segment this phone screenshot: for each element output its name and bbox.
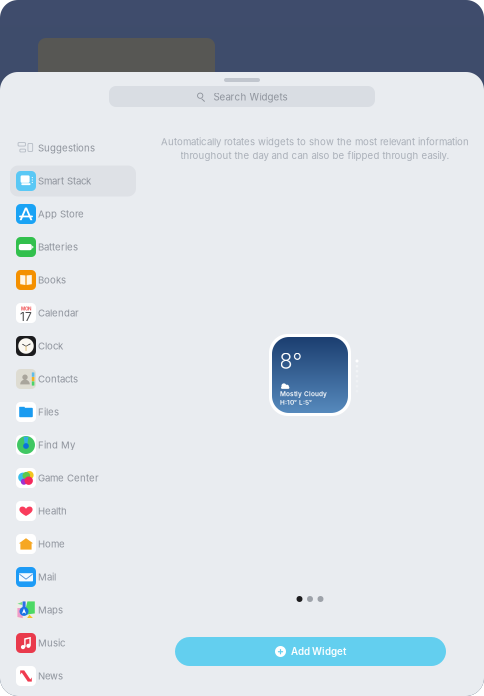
button[interactable]: Books [0,263,146,296]
button[interactable]: App Store [0,197,146,230]
staticText: Clock [38,340,63,352]
staticText: Search Widgets [213,91,287,103]
staticText: Add Widget [291,646,346,657]
staticText: Find My [38,439,75,451]
button[interactable]: Health [0,494,146,527]
button[interactable]: Add Widget [175,637,446,666]
button[interactable]: Suggestions [0,131,146,164]
button[interactable]: Game Center [0,461,146,494]
staticText: App Store [38,208,84,220]
button[interactable]: Files [0,395,146,428]
staticText: Mostly Cloudy [280,390,327,398]
staticText: Contacts [38,373,78,385]
button[interactable]: MON [0,296,146,329]
staticText: Calendar [38,307,79,319]
staticText: MON [21,306,31,311]
staticText: Files [38,406,59,418]
button[interactable]: Maps [0,593,146,626]
staticText: Smart Stack [38,175,91,187]
staticText: 8° [279,348,302,374]
button[interactable]: Smart Stack [0,164,146,197]
staticText: throughout the day and can also be flipp… [180,150,449,161]
staticText: Music [38,637,65,649]
button[interactable]: Clock [0,329,146,362]
button[interactable]: Mail [0,560,146,593]
staticText: Maps [38,604,63,616]
button[interactable]: Music [0,626,146,659]
staticText: Mail [38,571,56,583]
staticText: H:10° L:5° [280,398,312,406]
staticText: Batteries [38,241,78,253]
button[interactable]: News [0,659,146,692]
staticText: Suggestions [38,142,95,154]
staticText: Home [38,538,65,550]
button[interactable]: Home [0,527,146,560]
staticText: Automatically rotates widgets to show th… [161,136,469,148]
staticText: Game Center [38,472,99,484]
staticText: News [38,670,63,682]
button[interactable]: Batteries [0,230,146,263]
button[interactable]: Find My [0,428,146,461]
button[interactable]: Search Widgets [109,86,375,107]
staticText: Health [38,505,67,517]
staticText: Books [38,274,66,286]
button[interactable]: Contacts [0,362,146,395]
staticText: 17 [20,309,32,324]
